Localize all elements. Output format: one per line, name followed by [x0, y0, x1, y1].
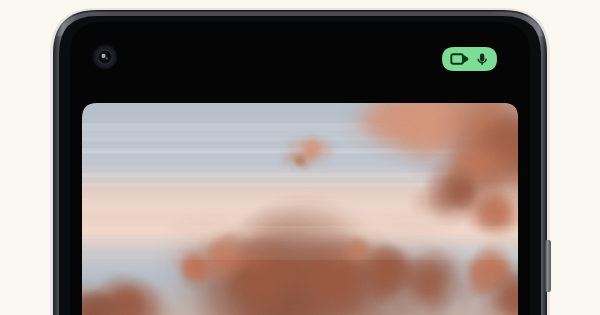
other: Phone showing sunset sky photo — [0, 0, 600, 315]
button[interactable]: Phone showing sunset sky photo — [0, 0, 600, 315]
